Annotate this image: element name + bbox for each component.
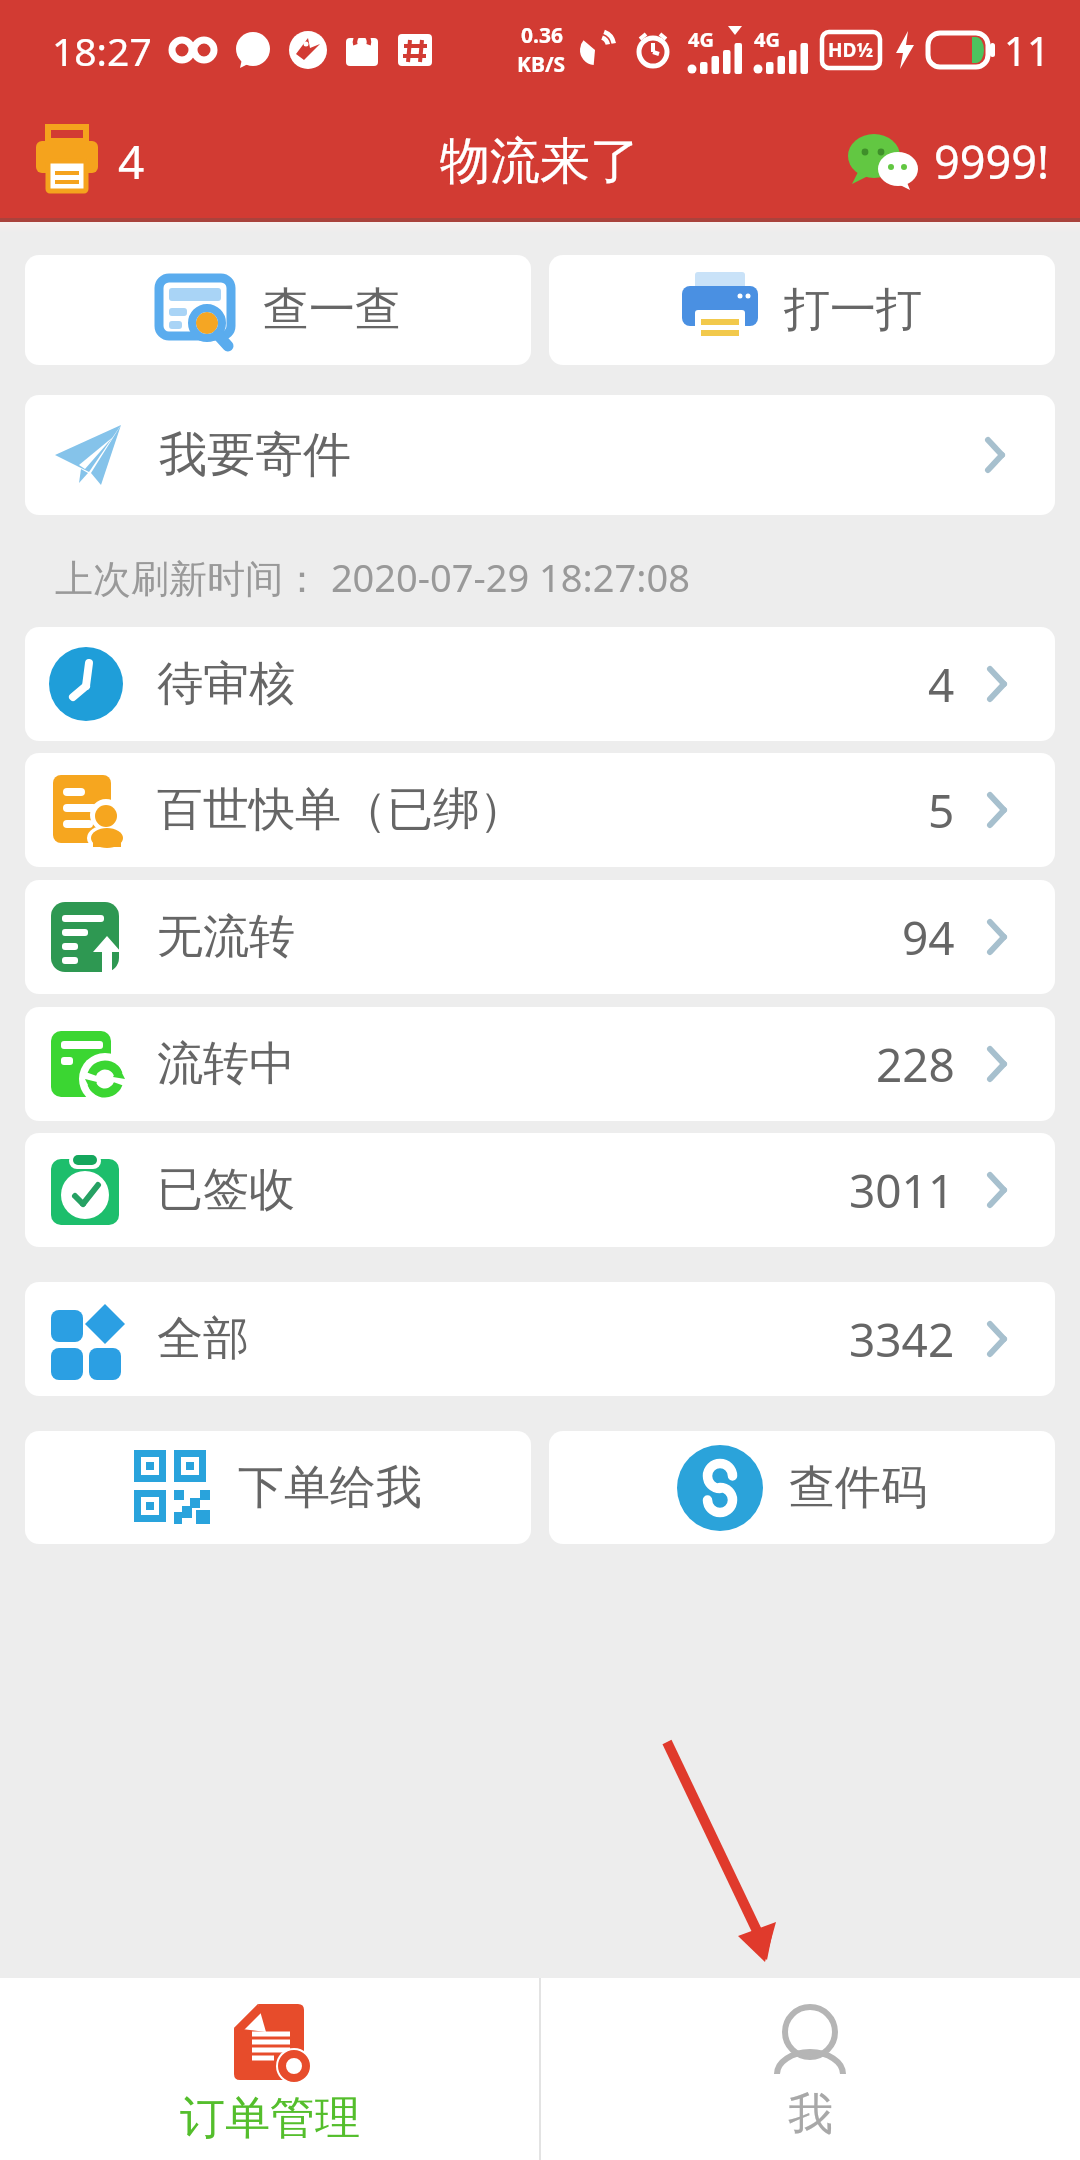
button[interactable]: 流转中 xyxy=(25,1007,1055,1121)
button[interactable]: 全部 xyxy=(25,1282,1055,1396)
staticText: 18:27 xyxy=(52,24,152,77)
staticText: 4G xyxy=(688,26,714,53)
staticText: 我 xyxy=(788,2086,833,2143)
staticText: 4G xyxy=(754,26,780,53)
staticText: HD½ xyxy=(828,37,874,63)
staticText: 无流转 xyxy=(157,908,295,966)
staticText: 我要寄件 xyxy=(159,425,351,485)
staticText: KB/S xyxy=(517,50,566,79)
button[interactable]: 9999! xyxy=(848,131,1050,192)
staticText: 查件码 xyxy=(789,1459,927,1517)
staticText: 0.36 xyxy=(521,21,563,50)
staticText: 物流来了 xyxy=(440,130,640,193)
staticText: 打一打 xyxy=(784,281,922,339)
button[interactable]: 下单给我 xyxy=(25,1431,531,1544)
staticText: 待审核 xyxy=(157,655,295,713)
button[interactable]: 待审核 xyxy=(25,627,1055,741)
button[interactable]: 无流转 xyxy=(25,880,1055,994)
staticText: 11 xyxy=(1004,23,1050,77)
staticText: 4 xyxy=(118,130,145,193)
staticText: 4 xyxy=(928,653,955,716)
button[interactable]: 我要寄件 xyxy=(25,395,1055,515)
button[interactable]: 已签收 xyxy=(25,1133,1055,1247)
staticText: 全部 xyxy=(157,1310,249,1368)
staticText: 订单管理 xyxy=(180,2090,360,2147)
staticText: 94 xyxy=(902,906,955,969)
staticText: 下单给我 xyxy=(238,1459,422,1517)
button[interactable]: 查一查 xyxy=(25,255,531,365)
staticText: 流转中 xyxy=(157,1035,295,1093)
staticText: 3342 xyxy=(849,1308,955,1371)
staticText: 查一查 xyxy=(263,281,401,339)
staticText: 228 xyxy=(876,1033,955,1096)
button[interactable]: 百世快单（已绑） xyxy=(25,753,1055,867)
staticText: 5 xyxy=(928,779,955,842)
staticText: 百世快单（已绑） xyxy=(157,781,525,839)
button[interactable]: 打一打 xyxy=(549,255,1055,365)
staticText: 已签收 xyxy=(157,1161,295,1219)
staticText: 上次刷新时间： 2020-07-29 18:27:08 xyxy=(55,551,690,603)
staticText: 9999! xyxy=(934,131,1050,192)
button[interactable]: 4 xyxy=(36,127,145,195)
staticText: 3011 xyxy=(849,1159,955,1222)
button[interactable]: 订单管理 xyxy=(0,1978,540,2160)
button[interactable]: 我 xyxy=(540,1978,1080,2160)
button[interactable]: 查件码 xyxy=(549,1431,1055,1544)
